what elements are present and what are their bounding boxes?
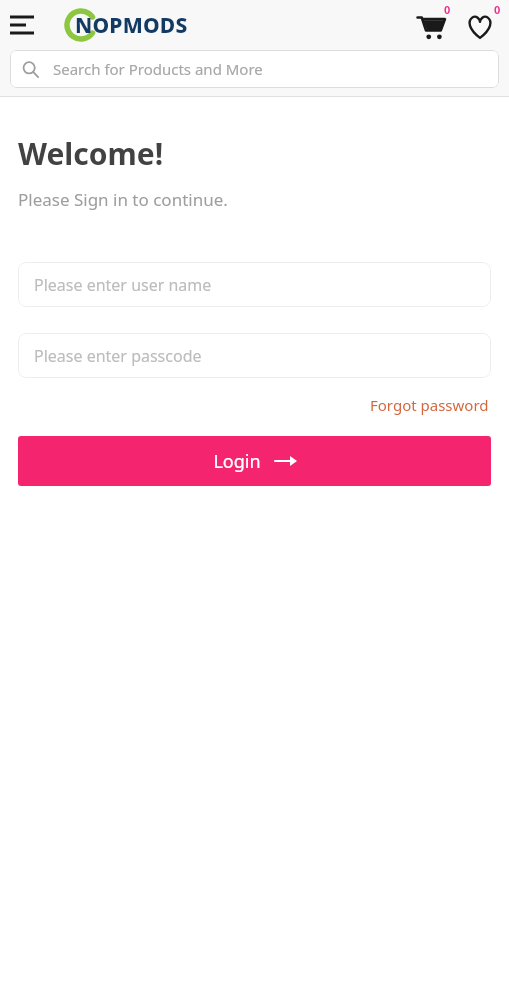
- button[interactable]: Login: [18, 436, 491, 486]
- button[interactable]: Please enter passcode: [18, 333, 491, 378]
- staticText: Search for Products and More: [53, 59, 263, 79]
- staticText: Please Sign in to continue.: [18, 188, 228, 211]
- button[interactable]: NOPMODS: [64, 8, 177, 42]
- button[interactable]: Wishlist: [458, 3, 502, 47]
- button[interactable]: Cart: [409, 3, 453, 47]
- button[interactable]: Search for Products and More: [10, 50, 499, 88]
- staticText: Please enter user name: [34, 274, 212, 296]
- staticText: Welcome!: [18, 133, 164, 174]
- button[interactable]: Please enter user name: [18, 262, 491, 307]
- staticText: 0: [444, 2, 451, 17]
- staticText: NOPMODS: [75, 11, 188, 40]
- staticText: Forgot password: [370, 395, 489, 415]
- staticText: 0: [494, 2, 501, 17]
- button[interactable]: Forgot password: [368, 392, 491, 418]
- staticText: Login: [213, 449, 261, 474]
- staticText: Please enter passcode: [34, 345, 202, 367]
- button[interactable]: Menu: [2, 5, 42, 45]
